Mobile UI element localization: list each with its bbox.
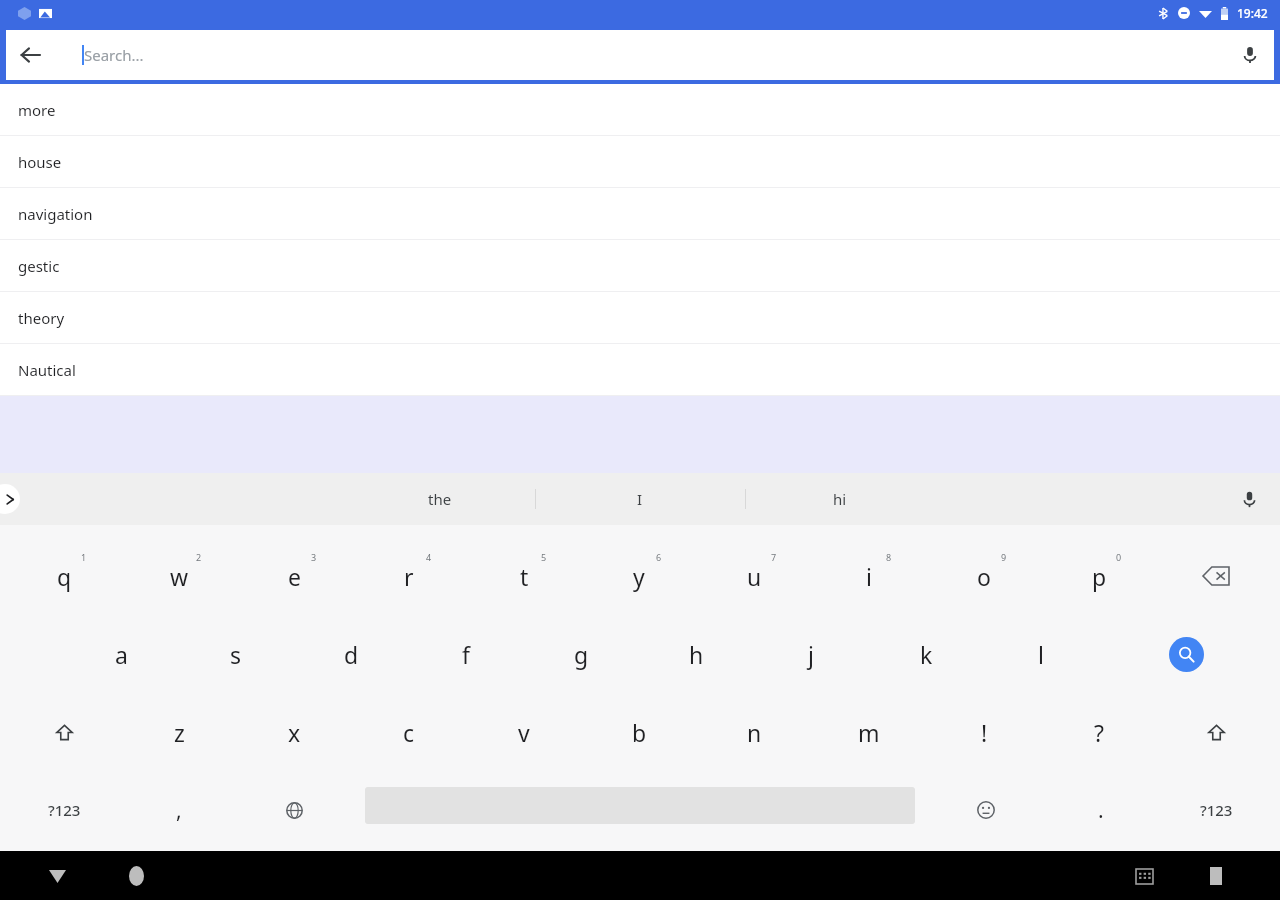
staticText: n: [747, 717, 762, 748]
button[interactable]: r: [352, 547, 466, 605]
button[interactable]: more: [0, 84, 1280, 135]
staticText: 8: [886, 551, 892, 563]
button[interactable]: Back: [6, 31, 54, 79]
staticText: c: [403, 717, 415, 748]
staticText: 3: [311, 551, 317, 563]
button[interactable]: n: [697, 703, 811, 761]
button[interactable]: Backspace: [1159, 547, 1273, 605]
staticText: 7: [771, 551, 777, 563]
button[interactable]: k: [869, 625, 983, 683]
staticText: x: [288, 717, 301, 748]
button[interactable]: y: [582, 547, 696, 605]
button[interactable]: Emoji: [929, 781, 1043, 839]
staticText: more: [18, 100, 56, 120]
staticText: i: [866, 561, 872, 592]
staticText: house: [18, 152, 62, 172]
staticText: w: [170, 561, 189, 592]
button[interactable]: .: [1044, 781, 1158, 839]
staticText: 5: [541, 551, 547, 563]
button[interactable]: navigation: [0, 188, 1280, 239]
staticText: Search...: [84, 45, 144, 65]
staticText: ?123: [1200, 800, 1233, 820]
button[interactable]: !: [927, 703, 1041, 761]
staticText: t: [520, 561, 529, 592]
button[interactable]: Shift: [1159, 703, 1273, 761]
button[interactable]: Change language: [237, 781, 351, 839]
button[interactable]: z: [122, 703, 236, 761]
staticText: I: [637, 489, 643, 509]
staticText: 19:42: [1237, 5, 1268, 21]
button[interactable]: Voice input: [1232, 482, 1266, 516]
staticText: h: [689, 639, 704, 670]
button[interactable]: s: [179, 625, 293, 683]
staticText: 0: [1116, 551, 1122, 563]
staticText: navigation: [18, 204, 93, 224]
button[interactable]: Recent apps: [1192, 852, 1240, 900]
button[interactable]: ?123: [1159, 781, 1273, 839]
button[interactable]: Search: [1129, 625, 1243, 683]
button[interactable]: h: [639, 625, 753, 683]
staticText: a: [115, 639, 128, 670]
button[interactable]: ,: [122, 781, 236, 839]
staticText: o: [977, 561, 991, 592]
button[interactable]: Voice search: [1226, 31, 1274, 79]
button[interactable]: Hide keyboard: [33, 852, 81, 900]
staticText: the: [428, 489, 452, 509]
button[interactable]: m: [812, 703, 926, 761]
staticText: z: [174, 717, 185, 748]
button[interactable]: Shift: [7, 703, 121, 761]
staticText: b: [632, 717, 647, 748]
staticText: g: [574, 639, 589, 670]
button[interactable]: Nautical: [0, 344, 1280, 395]
button[interactable]: u: [697, 547, 811, 605]
button[interactable]: c: [352, 703, 466, 761]
button[interactable]: ?123: [7, 781, 121, 839]
staticText: l: [1038, 639, 1044, 670]
button[interactable]: d: [294, 625, 408, 683]
button[interactable]: i: [812, 547, 926, 605]
staticText: hi: [833, 489, 847, 509]
button[interactable]: j: [754, 625, 868, 683]
button[interactable]: a: [64, 625, 178, 683]
staticText: 4: [426, 551, 432, 563]
button[interactable]: Home: [112, 852, 160, 900]
staticText: p: [1092, 561, 1107, 592]
staticText: gestic: [18, 256, 60, 276]
staticText: q: [57, 561, 72, 592]
button[interactable]: w: [122, 547, 236, 605]
button[interactable]: Expand suggestions: [0, 484, 20, 514]
button[interactable]: g: [524, 625, 638, 683]
button[interactable]: I: [540, 473, 740, 525]
button[interactable]: t: [467, 547, 581, 605]
button[interactable]: q: [7, 547, 121, 605]
button[interactable]: v: [467, 703, 581, 761]
staticText: m: [858, 717, 880, 748]
staticText: r: [404, 561, 414, 592]
staticText: ,: [176, 796, 182, 825]
button[interactable]: the: [340, 473, 540, 525]
staticText: !: [981, 717, 988, 748]
staticText: 6: [656, 551, 662, 563]
staticText: v: [518, 717, 530, 748]
button[interactable]: b: [582, 703, 696, 761]
button[interactable]: f: [409, 625, 523, 683]
staticText: s: [230, 639, 242, 670]
button[interactable]: l: [984, 625, 1098, 683]
staticText: j: [808, 639, 814, 670]
button[interactable]: hi: [740, 473, 940, 525]
button[interactable]: p: [1042, 547, 1156, 605]
button[interactable]: x: [237, 703, 351, 761]
button[interactable]: o: [927, 547, 1041, 605]
button[interactable]: gestic: [0, 240, 1280, 291]
staticText: theory: [18, 308, 65, 328]
staticText: 2: [196, 551, 202, 563]
staticText: f: [462, 639, 470, 670]
button[interactable]: e: [237, 547, 351, 605]
button[interactable]: ?: [1042, 703, 1156, 761]
button[interactable]: theory: [0, 292, 1280, 343]
button[interactable]: Switch keyboard: [1120, 852, 1168, 900]
staticText: 1: [81, 551, 87, 563]
button[interactable]: house: [0, 136, 1280, 187]
staticText: e: [288, 561, 301, 592]
